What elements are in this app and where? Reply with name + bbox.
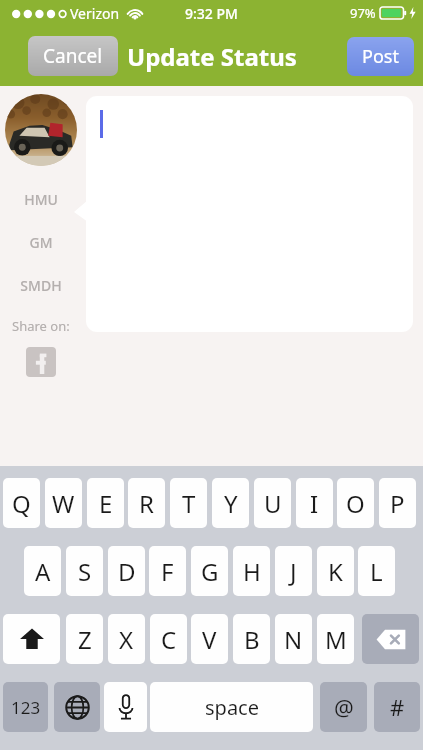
button[interactable]: Shift — [3, 614, 60, 664]
staticText: B — [244, 623, 260, 656]
staticText: I — [310, 487, 319, 520]
staticText: E — [99, 487, 113, 520]
button[interactable]: space — [150, 682, 313, 732]
staticText: Y — [224, 487, 238, 520]
staticText: F — [161, 555, 174, 588]
button[interactable]: I — [296, 478, 333, 528]
staticText: U — [264, 487, 282, 520]
button[interactable]: V — [191, 614, 228, 664]
staticText: A — [35, 555, 51, 588]
staticText: P — [390, 487, 405, 520]
staticText: R — [139, 487, 154, 520]
button[interactable]: SMDH — [14, 274, 68, 297]
button[interactable]: N — [275, 614, 312, 664]
button[interactable]: GM — [23, 231, 59, 254]
staticText: C — [161, 623, 177, 656]
staticText: N — [284, 623, 303, 656]
button[interactable]: Post — [347, 37, 414, 76]
button[interactable]: P — [379, 478, 416, 528]
staticText: M — [325, 623, 347, 656]
button[interactable]: B — [233, 614, 270, 664]
button[interactable]: T — [170, 478, 207, 528]
button[interactable]: M — [317, 614, 354, 664]
button[interactable]: Share on Facebook — [26, 347, 56, 377]
button[interactable]: Change keyboard language — [54, 682, 100, 732]
button[interactable]: E — [87, 478, 124, 528]
staticText: SMDH — [20, 276, 62, 295]
staticText: Q — [12, 487, 31, 520]
staticText: H — [243, 555, 261, 588]
staticText: O — [346, 487, 365, 520]
button[interactable]: Backspace — [362, 614, 419, 664]
staticText: 97% — [350, 4, 376, 22]
button[interactable]: Cancel — [28, 36, 118, 76]
staticText: GM — [29, 233, 53, 252]
staticText: S — [78, 555, 92, 588]
button[interactable]: Profile photo — [5, 94, 77, 166]
button[interactable]: # — [374, 682, 420, 732]
staticText: HMU — [24, 190, 58, 209]
staticText: J — [290, 555, 297, 588]
staticText: L — [370, 555, 383, 588]
staticText: Z — [78, 623, 92, 656]
button[interactable]: HMU — [18, 188, 64, 211]
button[interactable]: @ — [320, 682, 367, 732]
button[interactable]: X — [108, 614, 145, 664]
button[interactable]: Q — [3, 478, 40, 528]
button[interactable]: H — [233, 546, 270, 596]
button[interactable]: Voice input — [104, 682, 147, 732]
button[interactable]: R — [128, 478, 165, 528]
button[interactable]: K — [317, 546, 354, 596]
staticText: K — [328, 555, 343, 588]
button[interactable]: D — [108, 546, 145, 596]
button[interactable]: C — [150, 614, 187, 664]
staticText: W — [52, 487, 75, 520]
button[interactable]: O — [337, 478, 374, 528]
staticText: G — [201, 555, 219, 588]
button[interactable]: F — [149, 546, 186, 596]
button[interactable]: S — [66, 546, 103, 596]
staticText: Update Status — [127, 40, 297, 73]
button[interactable]: W — [45, 478, 82, 528]
staticText: # — [390, 692, 405, 722]
button[interactable]: U — [254, 478, 291, 528]
button[interactable]: Y — [212, 478, 249, 528]
staticText: Share on: — [12, 317, 70, 335]
staticText: Cancel — [43, 43, 103, 69]
button[interactable] — [86, 96, 413, 332]
button[interactable]: L — [358, 546, 395, 596]
button[interactable]: Z — [66, 614, 103, 664]
staticText: space — [205, 694, 259, 721]
button[interactable]: G — [191, 546, 228, 596]
staticText: @ — [334, 692, 354, 722]
staticText: 123 — [11, 696, 41, 719]
staticText: Post — [362, 44, 399, 69]
staticText: T — [182, 487, 196, 520]
staticText: D — [118, 555, 136, 588]
staticText: 9:32 PM — [185, 4, 238, 23]
button[interactable]: J — [275, 546, 312, 596]
button[interactable]: A — [24, 546, 61, 596]
staticText: Verizon — [70, 4, 120, 23]
button[interactable]: 123 — [3, 682, 48, 732]
staticText: V — [202, 623, 217, 656]
staticText: X — [119, 623, 134, 656]
